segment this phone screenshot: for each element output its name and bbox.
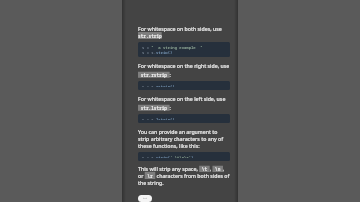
- staticText: s = s.strip(): [142, 50, 173, 54]
- button[interactable]: Profile avatar: [138, 195, 152, 202]
- staticText: For whitespace on both sides, use str.st…: [138, 25, 230, 39]
- staticText: You can provide an argument to strip arb…: [138, 128, 230, 149]
- staticText: s = " a string example ": [142, 45, 203, 50]
- staticText: str.lstrip :: [138, 104, 172, 111]
- staticText: s = s.rstrip(): [142, 84, 175, 87]
- staticText: For whitespace on the left side, use: [138, 95, 226, 102]
- staticText: s = s.lstrip(): [142, 117, 175, 120]
- button[interactable]: s = s.lstrip(): [138, 114, 230, 123]
- button[interactable]: s = " a string example ": [138, 42, 230, 57]
- staticText: str.rstrip :: [138, 71, 172, 78]
- staticText: For whitespace on the right side, use: [138, 62, 230, 69]
- button[interactable]: s = s.strip(' \t\n\r'): [138, 152, 230, 161]
- staticText: s = s.strip(' \t\n\r'): [142, 155, 194, 158]
- button[interactable]: s = s.rstrip(): [138, 81, 230, 90]
- staticText: This will strip any space, \t , \n , or …: [138, 165, 230, 186]
